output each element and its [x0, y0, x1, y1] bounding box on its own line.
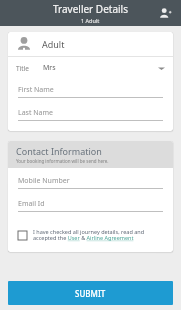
button[interactable]: Mobile Number	[18, 176, 163, 189]
button[interactable]: Email Id	[18, 199, 163, 212]
staticText: Traveller Details	[53, 2, 128, 16]
staticText: SUBMIT	[75, 288, 106, 299]
staticText: First Name	[18, 85, 54, 95]
button[interactable]: SUBMIT	[8, 281, 173, 305]
staticText: Adult	[42, 38, 65, 50]
button[interactable]: Last Name	[18, 108, 163, 121]
staticText: I have checked all journey details, read…	[33, 228, 163, 242]
staticText: Last Name	[18, 108, 54, 118]
button[interactable]: Title	[8, 57, 173, 79]
staticText: 1 Adult	[81, 17, 100, 24]
staticText: Mobile Number	[18, 176, 70, 186]
staticText: Contact Information	[16, 145, 102, 157]
staticText: Title	[16, 64, 29, 73]
staticText: Email Id	[18, 199, 45, 209]
button[interactable]: Adult	[8, 32, 173, 56]
staticText: Mrs	[43, 63, 56, 73]
button[interactable]: Add traveller	[155, 3, 175, 23]
button[interactable]: I have checked all journey details, read…	[8, 228, 173, 242]
button[interactable]: First Name	[18, 85, 163, 98]
staticText: Your booking information will be send he…	[16, 158, 109, 164]
